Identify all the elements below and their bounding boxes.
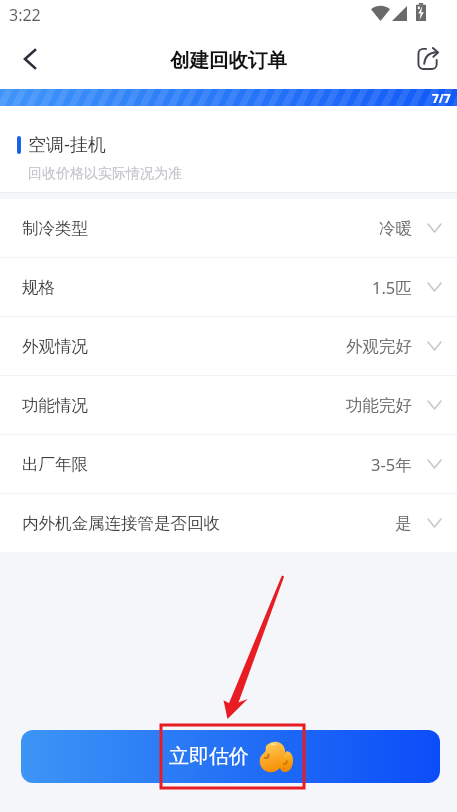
button[interactable]: 外观情况	[0, 317, 457, 375]
staticText: 立即估价	[169, 744, 249, 769]
staticText: 外观完好	[346, 336, 412, 357]
staticText: 制冷类型	[22, 218, 88, 239]
staticText: 功能情况	[22, 395, 88, 416]
button[interactable]: 制冷类型	[0, 199, 457, 257]
staticText: 3-5年	[371, 453, 412, 476]
staticText: 规格	[22, 277, 55, 298]
button[interactable]: 内外机金属连接管是否回收	[0, 494, 457, 552]
staticText: 3:22	[9, 4, 41, 26]
staticText: 空调-挂机	[28, 132, 106, 157]
staticText: 1.5匹	[372, 276, 412, 299]
staticText: 是	[395, 513, 412, 534]
staticText: 外观情况	[22, 336, 88, 357]
staticText: 创建回收订单	[170, 48, 287, 73]
staticText: 出厂年限	[22, 454, 88, 475]
button[interactable]: Share	[408, 37, 450, 79]
staticText: 内外机金属连接管是否回收	[22, 513, 220, 534]
button[interactable]: Back	[8, 37, 52, 81]
staticText: 回收价格以实际情况为准	[28, 165, 182, 183]
staticText: 7/7	[432, 90, 451, 106]
staticText: 冷暖	[379, 218, 412, 239]
button[interactable]: 出厂年限	[0, 435, 457, 493]
staticText: 功能完好	[346, 395, 412, 416]
button[interactable]: 规格	[0, 258, 457, 316]
button[interactable]: 功能情况	[0, 376, 457, 434]
button[interactable]: 立即估价	[21, 730, 440, 783]
